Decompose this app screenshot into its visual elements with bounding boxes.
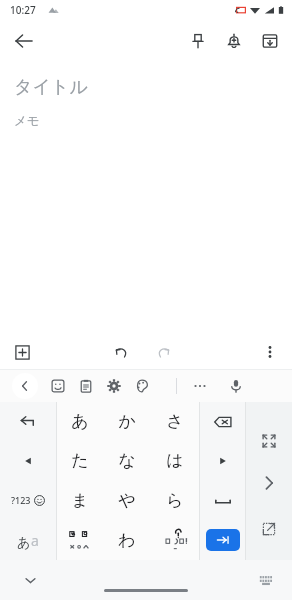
button[interactable]: は: [151, 441, 199, 480]
button[interactable]: や: [103, 480, 151, 520]
staticText: a: [31, 531, 39, 550]
staticText: ま: [71, 490, 89, 511]
button[interactable]: Theme: [128, 372, 156, 400]
staticText: わ: [118, 530, 136, 551]
button[interactable]: Enter: [199, 520, 246, 560]
button[interactable]: Switch input mode: [0, 520, 56, 560]
staticText: さ: [166, 411, 184, 432]
button[interactable]: Delete: [199, 402, 246, 441]
button[interactable]: た: [56, 441, 103, 480]
button[interactable]: Cursor left: [0, 441, 56, 480]
staticText: や: [118, 490, 136, 511]
button[interactable]: Next: [253, 467, 285, 499]
button[interactable]: Floating keyboard: [254, 514, 284, 544]
staticText: 10:27: [10, 3, 36, 17]
staticText: か: [118, 411, 136, 432]
button[interactable]: Add: [6, 336, 38, 368]
button[interactable]: Resize keyboard: [254, 426, 284, 456]
button[interactable]: Settings: [100, 372, 128, 400]
button[interactable]: Stickers: [44, 372, 72, 400]
button[interactable]: Previous: [12, 373, 38, 399]
button[interactable]: Back: [6, 23, 42, 59]
button[interactable]: な: [103, 441, 151, 480]
button[interactable]: Hide keyboard: [16, 566, 44, 594]
button[interactable]: More options: [254, 336, 286, 368]
button[interactable]: Backspace word: [0, 402, 56, 441]
button[interactable]: More tools: [186, 372, 214, 400]
button[interactable]: わ: [103, 520, 151, 560]
button[interactable]: Undo: [105, 336, 137, 368]
button[interactable]: Redo: [147, 336, 179, 368]
button[interactable]: Key: [151, 520, 199, 560]
button[interactable]: Clipboard: [72, 372, 100, 400]
staticText: あ: [17, 534, 31, 550]
button[interactable]: Reminder: [216, 23, 252, 59]
staticText: ?123: [11, 494, 31, 506]
button[interactable]: Space: [199, 480, 246, 520]
button[interactable]: Symbols: [0, 480, 56, 520]
button[interactable]: あ: [56, 402, 103, 441]
staticText: は: [166, 450, 184, 471]
button[interactable]: ま: [56, 480, 103, 520]
staticText: な: [118, 450, 136, 471]
staticText: タイトル: [14, 76, 88, 99]
button[interactable]: Voice input: [222, 372, 250, 400]
button[interactable]: Key: [56, 520, 103, 560]
staticText: ら: [166, 490, 184, 511]
button[interactable]: ら: [151, 480, 199, 520]
staticText: た: [71, 450, 89, 471]
button[interactable]: Switch keyboard: [252, 566, 280, 594]
button[interactable]: か: [103, 402, 151, 441]
button[interactable]: Archive: [252, 23, 288, 59]
button[interactable]: Pin: [180, 23, 216, 59]
button[interactable]: Cursor right: [199, 441, 246, 480]
button[interactable]: さ: [151, 402, 199, 441]
staticText: あ: [71, 411, 89, 432]
staticText: メモ: [14, 113, 40, 129]
